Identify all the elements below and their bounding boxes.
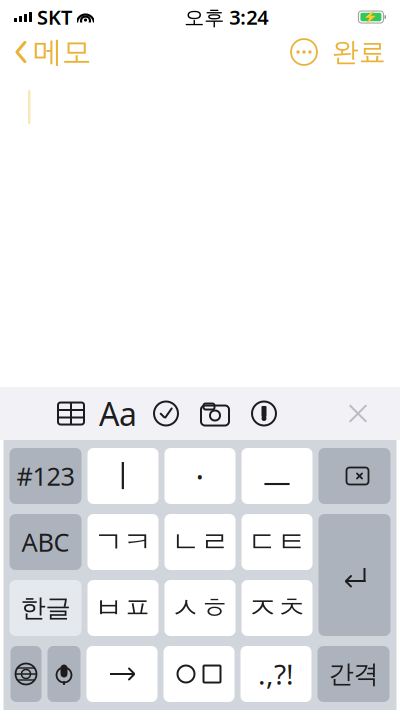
staticText: ㄱㅋ xyxy=(94,524,152,560)
button[interactable]: 메모 xyxy=(14,28,99,76)
button[interactable]: 받아쓰기 xyxy=(47,646,80,702)
button[interactable]: 간격 xyxy=(317,646,389,702)
staticText: ㅡ xyxy=(261,456,293,496)
button[interactable]: #123 xyxy=(9,448,81,504)
staticText: ㄴㄹ xyxy=(171,524,229,560)
button[interactable]: 다음 키보드 xyxy=(10,646,41,702)
button[interactable]: ㄴㄹ xyxy=(164,514,235,570)
button[interactable]: .,?! xyxy=(240,646,311,702)
staticText: 오후 3:24 xyxy=(184,4,268,30)
staticText: ABC xyxy=(21,525,69,559)
staticText: ⚡ xyxy=(363,10,378,24)
button[interactable]: ㅈㅊ xyxy=(241,580,312,636)
button[interactable]: ㅡ xyxy=(241,448,312,504)
button[interactable]: 표 xyxy=(48,391,94,435)
button[interactable]: ㅅㅎ xyxy=(164,580,235,636)
button[interactable]: 서식 xyxy=(94,391,142,435)
staticText: · xyxy=(195,455,204,497)
button[interactable]: 완료 xyxy=(324,30,386,74)
button[interactable]: 더 보기 xyxy=(284,33,324,71)
button[interactable]: ㄷㅌ xyxy=(241,514,312,570)
button[interactable]: ㅣ xyxy=(87,448,158,504)
staticText: Aa xyxy=(99,392,137,435)
button[interactable]: 줄바꿈 xyxy=(318,514,390,636)
staticText: 완료 xyxy=(332,36,386,68)
button[interactable]: · xyxy=(164,448,235,504)
staticText: 메모 xyxy=(33,34,91,70)
button[interactable]: 한글 xyxy=(9,580,81,636)
staticText: #123 xyxy=(16,459,74,493)
staticText: ㅣ xyxy=(107,456,139,496)
button[interactable]: ABC xyxy=(9,514,81,570)
staticText: ㄷㅌ xyxy=(248,524,306,560)
staticText: ㅅㅎ xyxy=(171,590,229,626)
button[interactable]: 키보드 닫기 xyxy=(336,391,380,435)
staticText: ㅂㅍ xyxy=(94,590,152,626)
button[interactable]: 카메라 xyxy=(190,391,240,435)
button[interactable]: 다음 글자 xyxy=(86,646,157,702)
staticText: SKT xyxy=(37,4,72,30)
button[interactable]: ㅂㅍ xyxy=(87,580,158,636)
staticText: 한글 xyxy=(20,592,70,623)
staticText: .,?! xyxy=(258,655,294,693)
button[interactable]: 체크리스트 xyxy=(142,391,190,435)
button[interactable]: ㄱㅋ xyxy=(87,514,158,570)
button[interactable]: ㅇㅁ xyxy=(163,646,234,702)
button[interactable]: 지우기 xyxy=(318,448,390,504)
staticText: 간격 xyxy=(328,658,378,689)
button[interactable]: 마크업 xyxy=(240,391,288,435)
staticText: ㅈㅊ xyxy=(248,590,306,626)
